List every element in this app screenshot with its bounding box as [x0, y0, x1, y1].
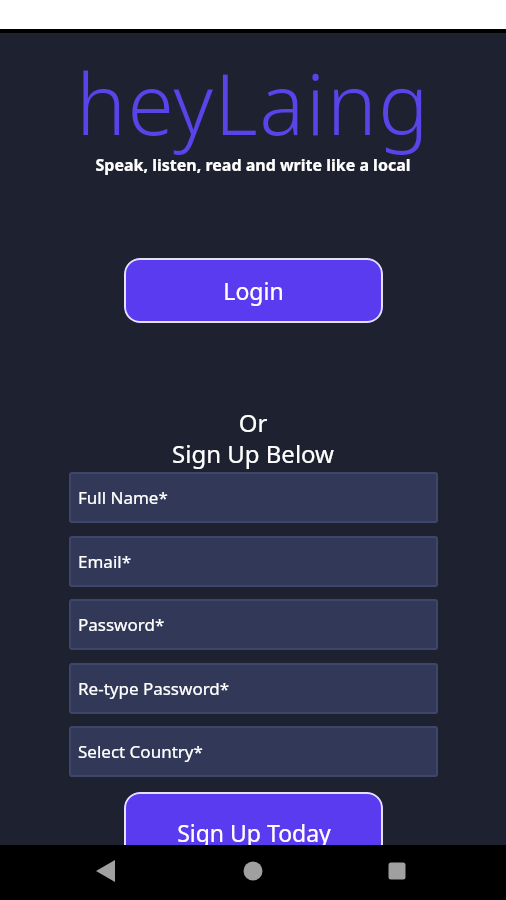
button[interactable]: Email*: [69, 536, 438, 587]
staticText: Speak, listen, read and write like a loc…: [0, 154, 506, 176]
button[interactable]: Full Name*: [69, 472, 438, 523]
button[interactable]: Password*: [69, 599, 438, 650]
staticText: Sign Up Below: [0, 437, 506, 470]
button[interactable]: Select Country*: [69, 726, 438, 777]
staticText: heyLaing: [0, 45, 506, 159]
staticText: Sign Up Today: [177, 817, 331, 848]
staticText: Password*: [78, 613, 165, 636]
staticText: Re-type Password*: [78, 677, 230, 700]
staticText: Select Country*: [78, 740, 203, 763]
button[interactable]: Login: [124, 258, 383, 323]
button[interactable]: [168, 845, 337, 900]
button[interactable]: [0, 845, 168, 900]
staticText: Login: [223, 275, 284, 306]
button[interactable]: Re-type Password*: [69, 663, 438, 714]
button[interactable]: Sign Up Today: [124, 792, 383, 872]
staticText: Email*: [78, 550, 132, 573]
staticText: Full Name*: [78, 486, 168, 509]
button[interactable]: [337, 845, 506, 900]
staticText: Or: [0, 406, 506, 439]
